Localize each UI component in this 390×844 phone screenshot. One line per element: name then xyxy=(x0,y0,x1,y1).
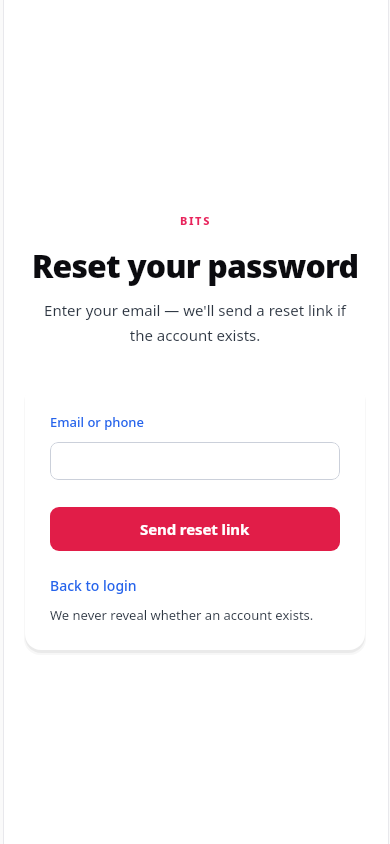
staticText: Enter your email — we'll send a reset li… xyxy=(34,300,356,345)
staticText: Email or phone xyxy=(50,413,144,431)
staticText: We never reveal whether an account exist… xyxy=(50,606,314,624)
button[interactable]: Email or phone input xyxy=(50,442,340,480)
staticText: Reset your password xyxy=(16,244,374,288)
staticText: BITS xyxy=(180,213,211,228)
button[interactable]: Back to login xyxy=(50,576,137,595)
staticText: Back to login xyxy=(50,576,137,595)
button[interactable]: Send reset link xyxy=(50,507,340,551)
staticText: Send reset link xyxy=(140,519,250,539)
